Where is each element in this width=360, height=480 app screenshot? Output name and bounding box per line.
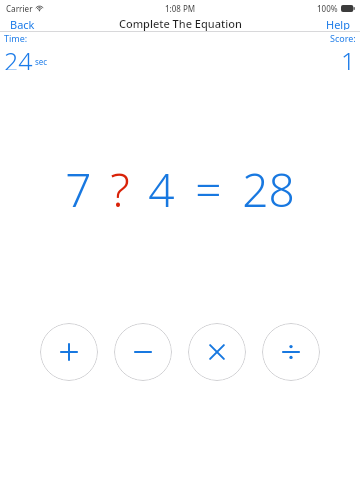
staticText: Help: [326, 17, 350, 30]
staticText: 4: [148, 158, 175, 221]
button[interactable]: Divide: [262, 323, 320, 381]
staticText: 7: [65, 158, 92, 221]
staticText: Time:: [4, 32, 28, 44]
staticText: 28: [242, 158, 295, 221]
button[interactable]: Minus: [114, 323, 172, 381]
staticText: 1: [341, 44, 356, 70]
staticText: Score:: [330, 32, 356, 44]
staticText: Carrier: [6, 3, 33, 14]
staticText: =: [195, 158, 222, 221]
staticText: 1:08 PM: [165, 3, 196, 14]
staticText: Complete The Equation: [119, 16, 242, 31]
button[interactable]: Help: [316, 16, 360, 31]
button[interactable]: Plus: [40, 323, 98, 381]
staticText: ?: [110, 158, 130, 221]
staticText: sec: [35, 56, 48, 67]
button[interactable]: Multiply: [188, 323, 246, 381]
staticText: 100%: [317, 3, 338, 14]
staticText: 24: [4, 44, 33, 70]
button[interactable]: Back: [0, 16, 45, 31]
staticText: Back: [10, 17, 35, 30]
